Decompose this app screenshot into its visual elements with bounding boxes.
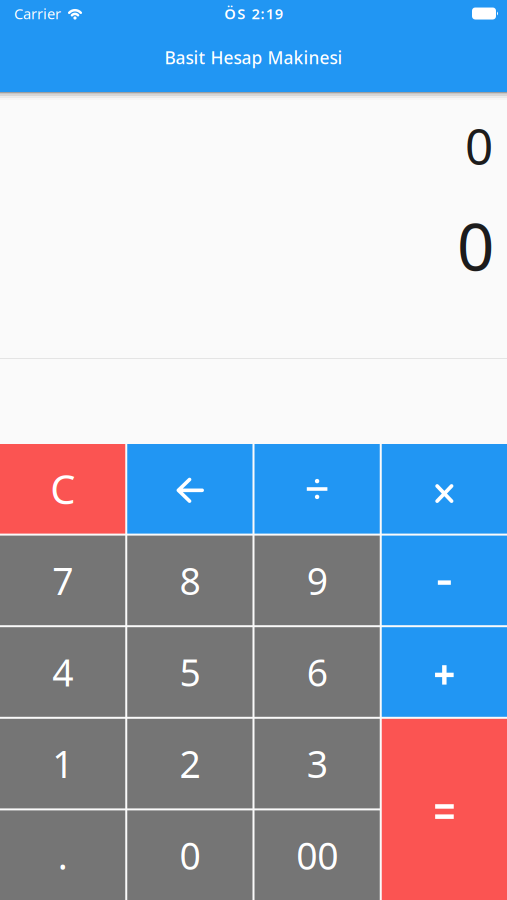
button[interactable]: C — [0, 444, 125, 534]
staticText: 0 — [465, 112, 493, 178]
button[interactable]: 0 — [127, 810, 252, 900]
staticText: 00 — [296, 830, 338, 880]
staticText: 7 — [52, 556, 73, 605]
staticText: C — [50, 462, 75, 515]
staticText: 5 — [179, 647, 200, 697]
button[interactable]: Multiply — [382, 444, 507, 534]
button[interactable]: 7 — [0, 536, 125, 625]
staticText: ÖS 2:19 — [224, 4, 283, 23]
button[interactable]: 6 — [254, 627, 380, 717]
button[interactable]: 2 — [127, 719, 252, 808]
button[interactable]: Backspace — [127, 444, 252, 534]
staticText: 9 — [307, 556, 328, 605]
button[interactable]: Minus — [382, 536, 507, 625]
button[interactable]: 8 — [127, 536, 252, 625]
button[interactable]: 9 — [254, 536, 380, 625]
staticText: 2 — [179, 739, 200, 788]
staticText: 1 — [52, 739, 73, 788]
button[interactable]: Plus — [382, 627, 507, 717]
button[interactable]: 00 — [254, 810, 380, 900]
staticText: Basit Hesap Makinesi — [164, 46, 342, 69]
staticText: 0 — [179, 830, 200, 880]
staticText: 4 — [52, 647, 73, 697]
staticText: 0 — [457, 202, 494, 289]
button[interactable]: 3 — [254, 719, 380, 808]
button[interactable]: 5 — [127, 627, 252, 717]
staticText: . — [58, 830, 68, 880]
button[interactable]: 1 — [0, 719, 125, 808]
staticText: 6 — [307, 647, 328, 697]
button[interactable]: 4 — [0, 627, 125, 717]
staticText: 3 — [307, 739, 328, 788]
button[interactable]: . — [0, 810, 125, 900]
button[interactable]: Equals — [382, 719, 507, 900]
button[interactable]: Divide — [254, 444, 380, 534]
staticText: 8 — [179, 556, 200, 605]
staticText: Carrier — [14, 4, 61, 23]
